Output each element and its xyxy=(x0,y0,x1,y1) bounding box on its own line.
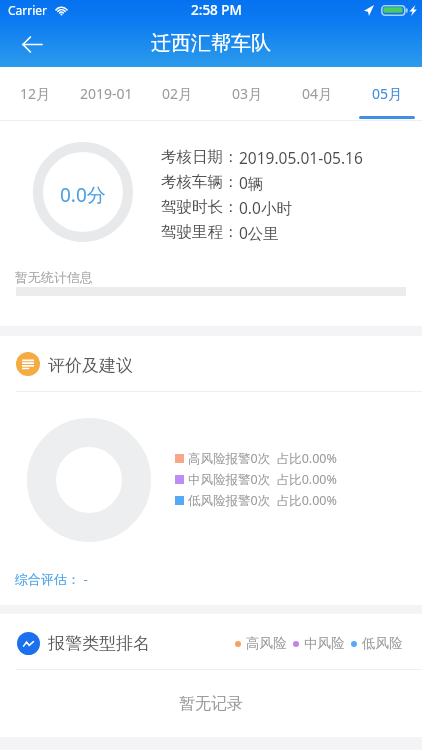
button[interactable]: 报警类型排名 xyxy=(17,614,403,669)
button[interactable]: 02月 xyxy=(142,67,212,120)
button[interactable]: 2019-01 xyxy=(71,67,142,120)
staticText: 03月 xyxy=(232,84,263,103)
staticText: 0公里 xyxy=(239,222,279,243)
button[interactable]: 04月 xyxy=(282,67,352,120)
staticText: 暂无统计信息 xyxy=(15,269,93,285)
staticText: 高风险 xyxy=(246,635,287,652)
staticText: 迁西汇帮车队 xyxy=(151,31,271,56)
staticText: 中风险 xyxy=(304,635,345,652)
staticText: 中风险报警0次 占比0.00% xyxy=(188,471,337,488)
staticText: 04月 xyxy=(302,84,333,103)
staticText: 驾驶里程： xyxy=(161,222,239,242)
staticText: 0辆 xyxy=(239,172,264,193)
staticText: 高风险报警0次 占比0.00% xyxy=(188,450,337,467)
button[interactable]: 12月 xyxy=(0,67,71,120)
staticText: 暂无记录 xyxy=(179,694,243,714)
staticText: 考核车辆： xyxy=(161,172,239,192)
staticText: 低风险 xyxy=(362,635,403,652)
staticText: 0.0分 xyxy=(60,182,106,208)
staticText: 0.0小时 xyxy=(239,197,292,218)
staticText: 2019-01 xyxy=(80,84,133,103)
staticText: 评价及建议 xyxy=(48,355,133,376)
staticText: 驾驶时长： xyxy=(161,197,239,217)
staticText: 2:58 PM xyxy=(191,1,242,19)
staticText: 综合评估： - xyxy=(15,570,88,588)
staticText: 低风险报警0次 占比0.00% xyxy=(188,492,337,509)
staticText: 05月 xyxy=(372,84,403,103)
staticText: 12月 xyxy=(20,84,51,103)
staticText: 2019.05.01-05.16 xyxy=(239,147,363,168)
staticText: Carrier xyxy=(8,2,48,18)
button[interactable]: Back xyxy=(12,24,52,64)
button[interactable]: 03月 xyxy=(212,67,282,120)
staticText: 报警类型排名 xyxy=(48,633,150,654)
button[interactable]: 评价及建议 xyxy=(16,336,422,391)
staticText: 考核日期： xyxy=(161,147,239,167)
staticText: 02月 xyxy=(162,84,193,103)
button[interactable]: 05月 xyxy=(352,67,422,120)
